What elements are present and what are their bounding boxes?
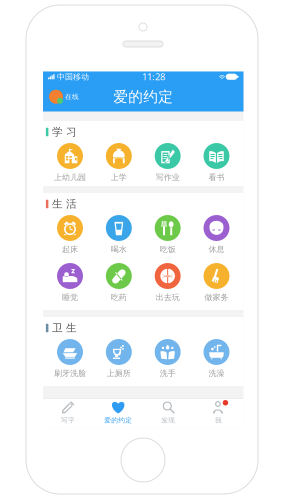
staticText: 出去玩 [156,292,180,302]
staticText: 做家务 [204,292,228,302]
staticText: 在线 [65,93,79,101]
staticText: 刷牙洗脸 [54,368,86,378]
button[interactable]: 上厕所 [94,339,143,387]
staticText: 吃饭 [160,244,176,254]
staticText: 睡觉 [62,292,78,302]
staticText: 我 [215,416,222,424]
staticText: 休息 [208,244,224,254]
button[interactable]: 休息 [192,215,241,263]
staticText: 学 习 [52,125,77,138]
staticText: 爱的约定 [104,416,132,424]
staticText: 卫 生 [52,321,77,334]
button[interactable]: Profile, online [49,90,79,104]
button[interactable]: 出去玩 [143,263,192,311]
staticText: 上学 [111,172,127,182]
button[interactable]: 做家务 [192,263,241,311]
button[interactable]: 洗手 [143,339,192,387]
staticText: 洗澡 [208,368,224,378]
button[interactable]: 爱的约定 [93,396,143,431]
staticText: 吃药 [111,292,127,302]
button[interactable]: 喝水 [94,215,143,263]
button[interactable]: 我 [193,396,243,431]
staticText: 起床 [62,244,78,254]
button[interactable]: 看书 [192,143,241,191]
button[interactable]: 睡觉 [46,263,94,311]
staticText: 洗手 [160,368,176,378]
staticText: 写字 [61,416,75,424]
staticText: 喝水 [111,244,127,254]
staticText: 看书 [208,172,224,182]
button[interactable]: 上幼儿园 [46,143,94,191]
staticText: 发现 [161,416,175,424]
button[interactable]: 写字 [43,396,93,431]
button[interactable]: 吃饭 [143,215,192,263]
staticText: 上厕所 [107,368,131,378]
staticText: 爱的约定 [113,88,173,106]
button[interactable]: 洗澡 [192,339,241,387]
button[interactable]: 吃药 [94,263,143,311]
button[interactable]: 写作业 [143,143,192,191]
staticText: 生 活 [52,197,77,210]
staticText: 11:28 [142,71,165,83]
button[interactable]: 上学 [94,143,143,191]
button[interactable]: 发现 [143,396,193,431]
staticText: 写作业 [156,172,180,182]
staticText: 中国移动 [55,72,89,82]
button[interactable]: 刷牙洗脸 [46,339,94,387]
button[interactable]: 起床 [46,215,94,263]
staticText: 上幼儿园 [54,172,86,182]
